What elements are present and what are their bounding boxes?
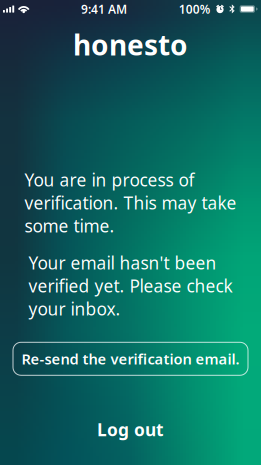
staticText: Your email hasn't been verified yet. Ple… bbox=[28, 251, 232, 320]
staticText: honesto bbox=[73, 26, 188, 63]
staticText: Log out bbox=[97, 418, 164, 441]
staticText: You are in process of verification. This… bbox=[24, 168, 236, 237]
button[interactable]: Log out bbox=[87, 408, 174, 451]
staticText: 9:41 AM bbox=[81, 1, 127, 17]
staticText: 100% bbox=[179, 1, 211, 17]
staticText: Re-send the verification email. bbox=[21, 349, 239, 368]
button[interactable]: Re-send the verification email. bbox=[13, 342, 248, 375]
